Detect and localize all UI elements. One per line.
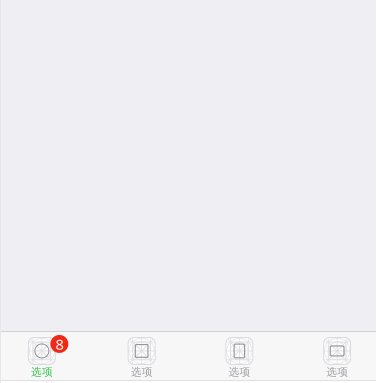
staticText: 选项	[326, 365, 348, 378]
staticText: 8	[55, 334, 63, 354]
button[interactable]: 选项	[95, 332, 189, 380]
button[interactable]: 8	[1, 332, 95, 380]
staticText: 选项	[228, 365, 250, 378]
staticText: 选项	[31, 365, 53, 378]
button[interactable]: 选项	[282, 332, 376, 380]
button[interactable]: 选项	[188, 332, 282, 380]
staticText: 选项	[131, 365, 153, 378]
